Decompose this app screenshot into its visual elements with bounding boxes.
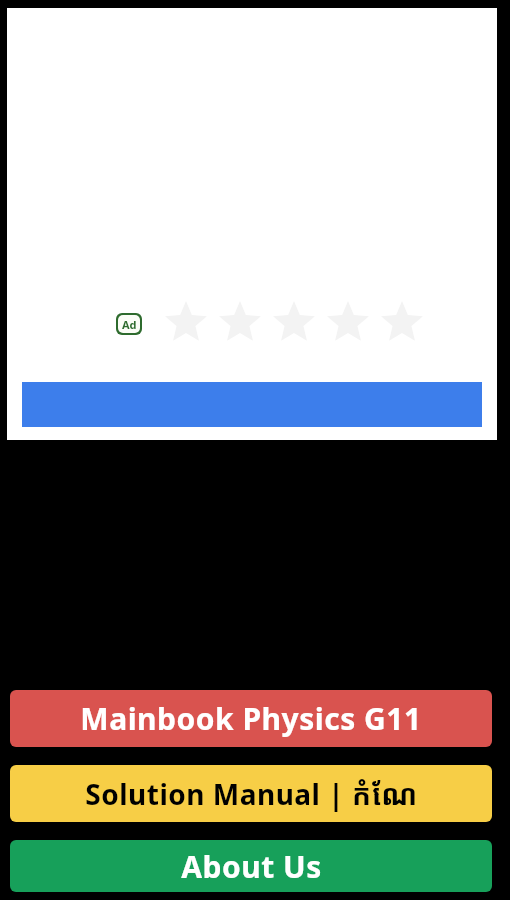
button[interactable]: Mainbook Physics G11 (10, 690, 492, 747)
staticText: Solution Manual | កំណែ (85, 775, 418, 813)
staticText: About Us (181, 846, 322, 887)
staticText: Ad (122, 317, 137, 332)
button[interactable]: Advertisement (7, 8, 497, 440)
button[interactable]: About Us (10, 840, 492, 892)
staticText: Mainbook Physics G11 (80, 698, 422, 739)
button[interactable]: Solution Manual | កំណែ (10, 765, 492, 822)
